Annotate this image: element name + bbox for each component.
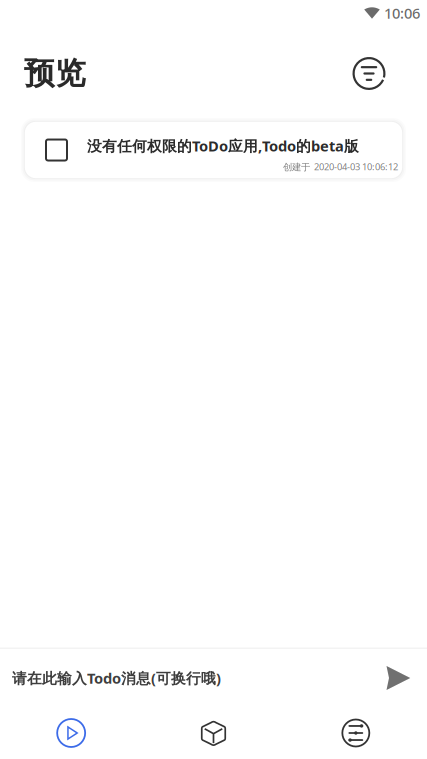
staticText: 没有任何权限的ToDo应用,Todo的beta版 [87,136,359,156]
staticText: 10:06 [384,3,420,23]
button[interactable]: Todos [0,707,142,759]
button[interactable]: Send [376,653,420,703]
button[interactable]: Settings [285,707,427,759]
button[interactable]: 没有任何权限的ToDo应用,Todo的beta版 [0,121,427,179]
button[interactable]: Packages [142,707,285,759]
button[interactable]: Filter [345,49,393,97]
staticText: 创建于 2020-04-03 10:06:12 [283,160,398,173]
staticText: 请在此输入Todo消息(可换行哦) [12,668,221,688]
staticText: 预览 [24,55,86,92]
